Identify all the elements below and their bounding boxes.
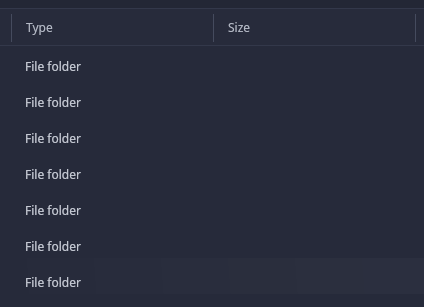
staticText: File folder [25, 202, 81, 218]
staticText: File folder [25, 94, 81, 110]
staticText: File folder [25, 238, 81, 254]
button[interactable]: File folder [0, 48, 424, 84]
staticText: Size [228, 19, 251, 35]
button[interactable]: File folder [0, 156, 424, 192]
button[interactable]: Size [213, 8, 415, 46]
staticText: File folder [25, 166, 81, 182]
button[interactable]: File folder [0, 228, 424, 264]
button[interactable]: File folder [0, 84, 424, 120]
button[interactable]: Type [11, 8, 213, 46]
staticText: File folder [25, 58, 81, 74]
staticText: File folder [25, 274, 81, 290]
button[interactable]: File folder [0, 264, 424, 300]
button[interactable]: File folder [0, 120, 424, 156]
staticText: File folder [25, 130, 81, 146]
staticText: Type [26, 19, 53, 35]
button[interactable]: File folder [0, 192, 424, 228]
